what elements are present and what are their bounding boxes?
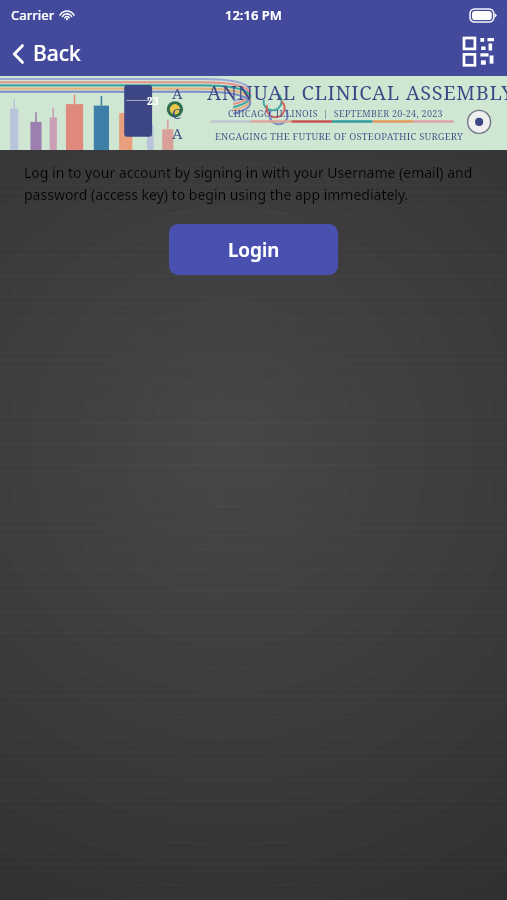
button[interactable]: Login (169, 224, 338, 275)
staticText: Login (228, 237, 280, 263)
staticText: Back (33, 39, 81, 68)
staticText: CHICAGO, ILLINOIS | SEPTEMBER 20-24, 202… (228, 107, 443, 119)
staticText: ENGAGING THE FUTURE OF OSTEOPATHIC SURGE… (215, 130, 464, 143)
button[interactable]: Scan QR code (451, 30, 507, 76)
staticText: 23 (147, 94, 159, 108)
staticText: A (172, 123, 183, 143)
staticText: Log in to your account by signing in wit… (24, 163, 485, 204)
button[interactable]: Back (0, 33, 95, 74)
staticText: Carrier (11, 6, 55, 24)
staticText: 12:16 PM (225, 6, 282, 24)
staticText: ANNUAL CLINICAL ASSEMBLY (207, 79, 507, 106)
staticText: A (172, 83, 183, 103)
staticText: C (172, 103, 182, 123)
